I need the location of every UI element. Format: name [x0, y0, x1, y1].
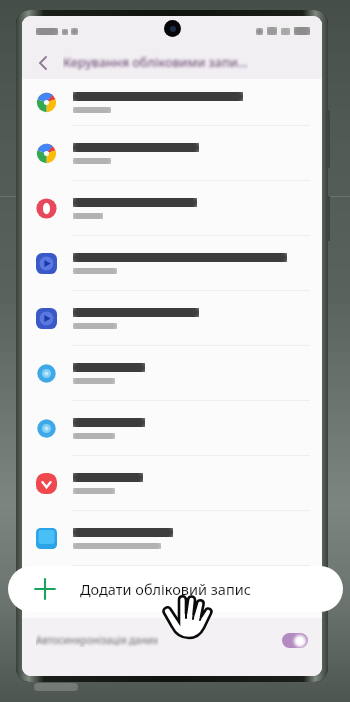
button[interactable]: Додати обліковий запис [8, 566, 343, 612]
button[interactable] [22, 401, 322, 455]
staticText: Додати обліковий запис [80, 579, 251, 599]
button[interactable] [22, 181, 322, 235]
staticText: Керування обліковими запи… [63, 54, 248, 71]
button[interactable]: Auto-sync toggle [282, 633, 308, 648]
button[interactable] [22, 456, 322, 510]
button[interactable] [22, 511, 322, 565]
button[interactable] [22, 291, 322, 345]
button[interactable] [22, 346, 322, 400]
staticText: Автосинхронізація даних [36, 633, 159, 647]
button[interactable] [22, 236, 322, 290]
button[interactable] [22, 80, 322, 125]
button[interactable]: Back [30, 50, 56, 76]
button[interactable] [22, 126, 322, 180]
